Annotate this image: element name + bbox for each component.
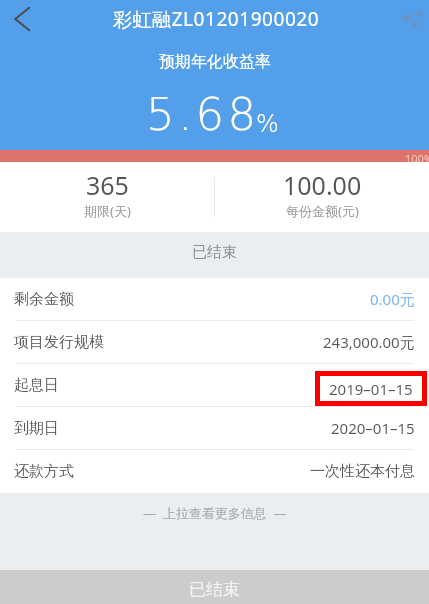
staticText: 100% <box>405 151 429 163</box>
button[interactable]: Share <box>389 0 429 38</box>
button[interactable]: 已结束 <box>0 570 429 604</box>
staticText: 5.68 <box>146 88 260 140</box>
staticText: 100.00 <box>283 168 362 202</box>
staticText: 还款方式 <box>14 462 74 481</box>
button[interactable]: 起息日 <box>0 364 429 407</box>
staticText: 已结束 <box>189 579 240 600</box>
staticText: 起息日 <box>14 376 59 395</box>
staticText: 每份金额(元) <box>286 202 359 220</box>
staticText: 2020–01–15 <box>331 418 415 438</box>
staticText: — 上拉查看更多信息 — <box>143 504 287 522</box>
staticText: 0.00元 <box>370 289 415 309</box>
button[interactable]: 到期日 <box>0 407 429 450</box>
button[interactable]: 剩余金额 <box>0 278 429 321</box>
staticText: 365 <box>86 168 129 202</box>
staticText: 一次性还本付息 <box>310 462 415 481</box>
button[interactable]: 项目发行规模 <box>0 321 429 364</box>
staticText: 剩余金额 <box>14 290 74 309</box>
staticText: % <box>256 110 279 138</box>
staticText: 彩虹融ZL01201900020 <box>113 6 320 32</box>
staticText: 2019–01–15 <box>329 379 413 399</box>
button[interactable]: Back <box>0 0 44 38</box>
staticText: 项目发行规模 <box>14 333 104 352</box>
staticText: 预期年化收益率 <box>159 52 271 72</box>
staticText: 到期日 <box>14 419 59 438</box>
staticText: 已结束 <box>192 243 237 262</box>
staticText: 期限(天) <box>84 202 131 220</box>
staticText: 243,000.00元 <box>323 332 415 352</box>
button[interactable]: 还款方式 <box>0 450 429 493</box>
